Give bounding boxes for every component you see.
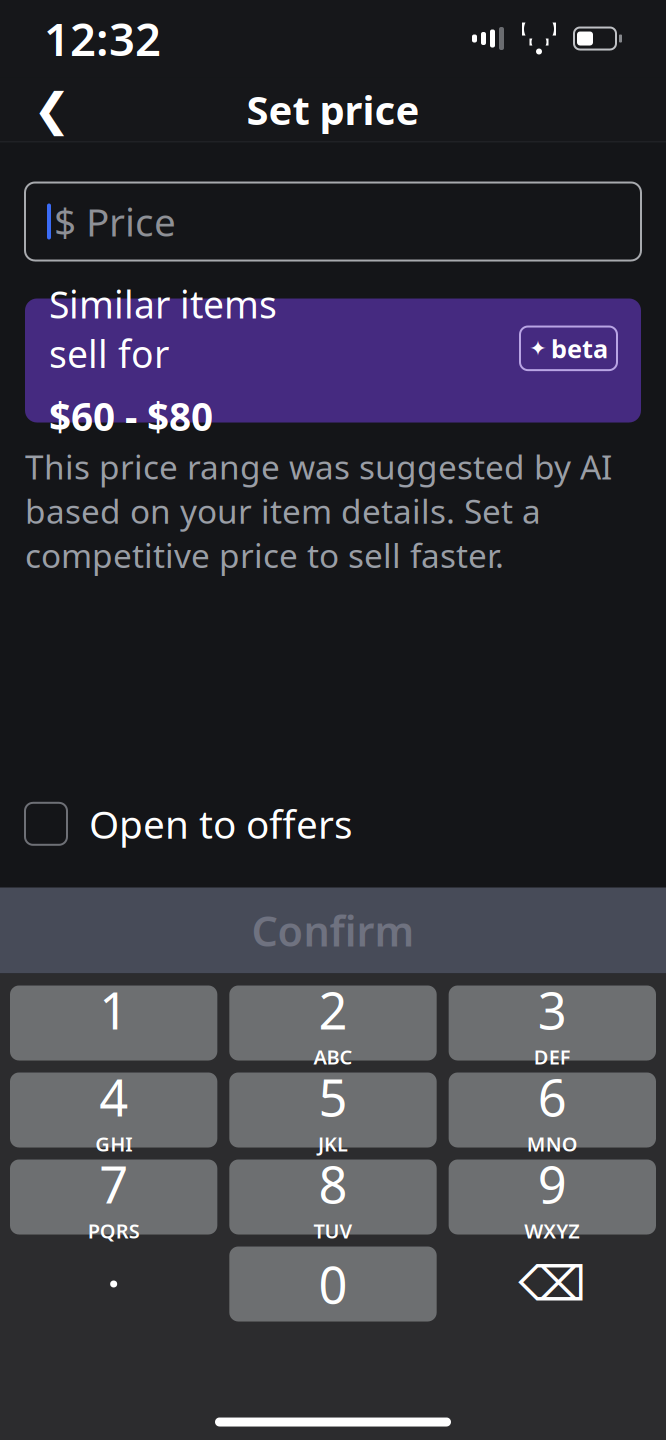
button[interactable]: 0 (229, 1246, 437, 1321)
staticText: WXYZ (524, 1217, 580, 1244)
button[interactable]: Decimal point (10, 1246, 217, 1321)
staticText: Confirm (251, 903, 414, 958)
staticText: TUV (313, 1217, 352, 1244)
staticText: 6 (538, 1063, 567, 1130)
staticText: DEF (534, 1043, 571, 1070)
staticText: 12:32 (44, 8, 161, 69)
staticText: Set price (246, 83, 419, 136)
button[interactable]: 1 (10, 985, 217, 1060)
staticText: 9 (538, 1150, 567, 1217)
staticText: GHI (95, 1130, 132, 1157)
button[interactable]: 9 (449, 1159, 656, 1234)
button[interactable]: Confirm (0, 887, 666, 973)
button[interactable]: Delete (449, 1246, 656, 1321)
staticText: 0 (318, 1250, 347, 1318)
staticText: 3 (538, 976, 567, 1043)
button[interactable]: Back (20, 77, 84, 141)
staticText: JKL (318, 1130, 348, 1157)
staticText: ✦ (529, 336, 547, 360)
staticText: 2 (318, 976, 347, 1043)
button[interactable]: 3 (449, 985, 656, 1060)
button[interactable]: 7 (10, 1159, 217, 1234)
staticText: Similar items sell for (49, 279, 277, 378)
staticText: 1 (99, 976, 128, 1043)
staticText: PQRS (88, 1217, 140, 1244)
button[interactable]: Open to offers (25, 790, 641, 857)
staticText: 5 (318, 1063, 347, 1130)
staticText: $ Price (54, 196, 176, 247)
button[interactable]: 2 (229, 985, 437, 1060)
button[interactable]: 6 (449, 1072, 656, 1147)
staticText: Open to offers (89, 798, 353, 849)
staticText: ❮ (33, 84, 71, 135)
staticText: beta (551, 331, 608, 365)
staticText: $60 - $80 (49, 390, 213, 442)
staticText: ABC (313, 1043, 352, 1070)
button[interactable]: 5 (229, 1072, 437, 1147)
staticText: MNO (527, 1130, 578, 1157)
staticText: ⌫ (518, 1257, 586, 1311)
staticText: 8 (318, 1150, 347, 1217)
button[interactable]: 8 (229, 1159, 437, 1234)
staticText: 7 (99, 1150, 128, 1217)
staticText: 4 (99, 1063, 128, 1130)
button[interactable]: 4 (10, 1072, 217, 1147)
staticText: This price range was suggested by AI bas… (25, 444, 612, 577)
